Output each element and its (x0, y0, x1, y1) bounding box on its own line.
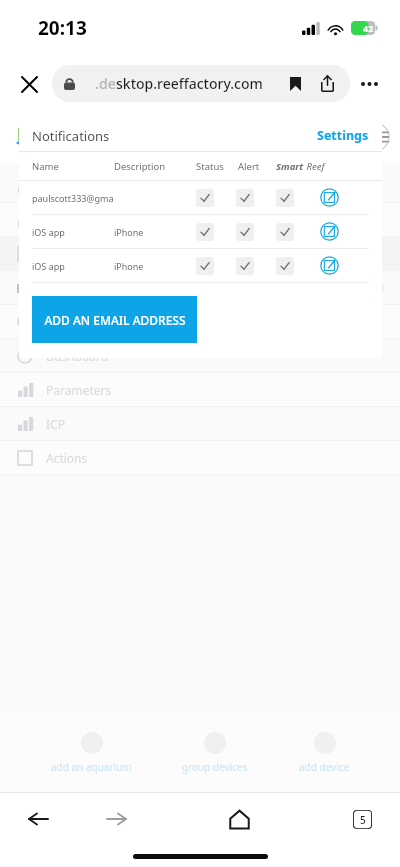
staticText: Notifications (32, 127, 110, 145)
staticText: Actions (46, 246, 88, 262)
staticText: — (60, 281, 70, 295)
staticText: paulscott333@gmail.o (32, 192, 114, 204)
staticText: Description (114, 160, 196, 173)
staticText: iPhone (114, 226, 196, 238)
staticText: Settings (317, 127, 369, 144)
staticText: Aquarium information (46, 314, 172, 330)
button[interactable]: Toggle (276, 257, 294, 275)
button[interactable]: Bookmarks (284, 73, 306, 95)
staticText: 20:13 (38, 15, 87, 41)
button[interactable]: Toggle (236, 189, 254, 207)
button[interactable]: Actions (0, 441, 400, 475)
button[interactable]: Actions (0, 237, 400, 271)
staticText: de (99, 74, 116, 93)
button[interactable]: Back (18, 799, 58, 839)
button[interactable]: Close (12, 67, 46, 101)
button[interactable]: Edit (320, 256, 339, 275)
button[interactable]: Toggle (276, 223, 294, 241)
button[interactable]: group devices (182, 732, 248, 774)
button[interactable]: More (350, 65, 388, 103)
button[interactable]: Notifications (288, 122, 318, 152)
button[interactable]: Tabs (342, 799, 382, 839)
staticText: REEF (69, 128, 104, 146)
button[interactable]: Toggle (196, 257, 214, 275)
staticText: Parameters (46, 178, 112, 194)
button[interactable]: Share (316, 73, 338, 95)
staticText: ADD AN EMAIL ADDRESS (44, 312, 186, 328)
button[interactable]: Toggle (196, 189, 214, 207)
button[interactable]: add device (299, 732, 350, 774)
button[interactable]: Toggle (236, 257, 254, 275)
button[interactable]: ADD AN EMAIL ADDRESS (32, 296, 197, 343)
staticText: Parameters (46, 382, 112, 398)
staticText: Alert (238, 160, 266, 173)
staticText: ICP (46, 212, 65, 228)
button[interactable]: Toggle (196, 223, 214, 241)
button[interactable]: Devices (324, 122, 354, 152)
staticText: iOS app (32, 260, 114, 272)
button[interactable]: ICP (0, 203, 400, 237)
button[interactable]: Forward (96, 799, 136, 839)
staticText: Actions (46, 450, 88, 466)
staticText: group devices (182, 760, 248, 774)
staticText: FACTORY (104, 128, 171, 146)
staticText: Status (196, 160, 234, 173)
button[interactable]: Home (219, 799, 259, 839)
staticText: sktop.reeffactory.com (116, 74, 263, 93)
button[interactable]: Edit (320, 222, 339, 241)
button[interactable]: Parameters (0, 373, 400, 407)
staticText: Smart (276, 160, 304, 173)
button[interactable]: iOS app (32, 249, 382, 282)
staticText: add an aquarium (51, 760, 132, 774)
staticText: ICP (46, 416, 65, 432)
staticText: iPhone (114, 260, 196, 272)
button[interactable]: paulscott333@gmail.o (32, 181, 382, 214)
button[interactable]: Dashboard (0, 339, 400, 373)
button[interactable]: Aquarium information (0, 305, 400, 339)
staticText: iOS app (32, 226, 114, 238)
button[interactable]: Edit (320, 188, 339, 207)
button[interactable]: Parameters (0, 169, 400, 203)
button[interactable]: iOS app (32, 215, 382, 248)
button[interactable]: add an aquarium (51, 732, 132, 774)
staticText: Reef (304, 160, 325, 173)
staticText: 42 (363, 22, 374, 34)
button[interactable]: Language (252, 122, 282, 152)
staticText: add device (299, 760, 350, 774)
staticText: . (95, 74, 99, 93)
button[interactable]: Toggle (276, 189, 294, 207)
staticText: Name (32, 160, 114, 173)
staticText: Reefly (16, 280, 54, 296)
button[interactable]: Toggle (236, 223, 254, 241)
button[interactable]: . (52, 65, 350, 102)
staticText: Dashboard (46, 348, 109, 364)
button[interactable]: Settings (317, 127, 369, 144)
button[interactable]: Menu (360, 122, 390, 152)
staticText: 5 (360, 813, 366, 827)
button[interactable]: ICP (0, 407, 400, 441)
